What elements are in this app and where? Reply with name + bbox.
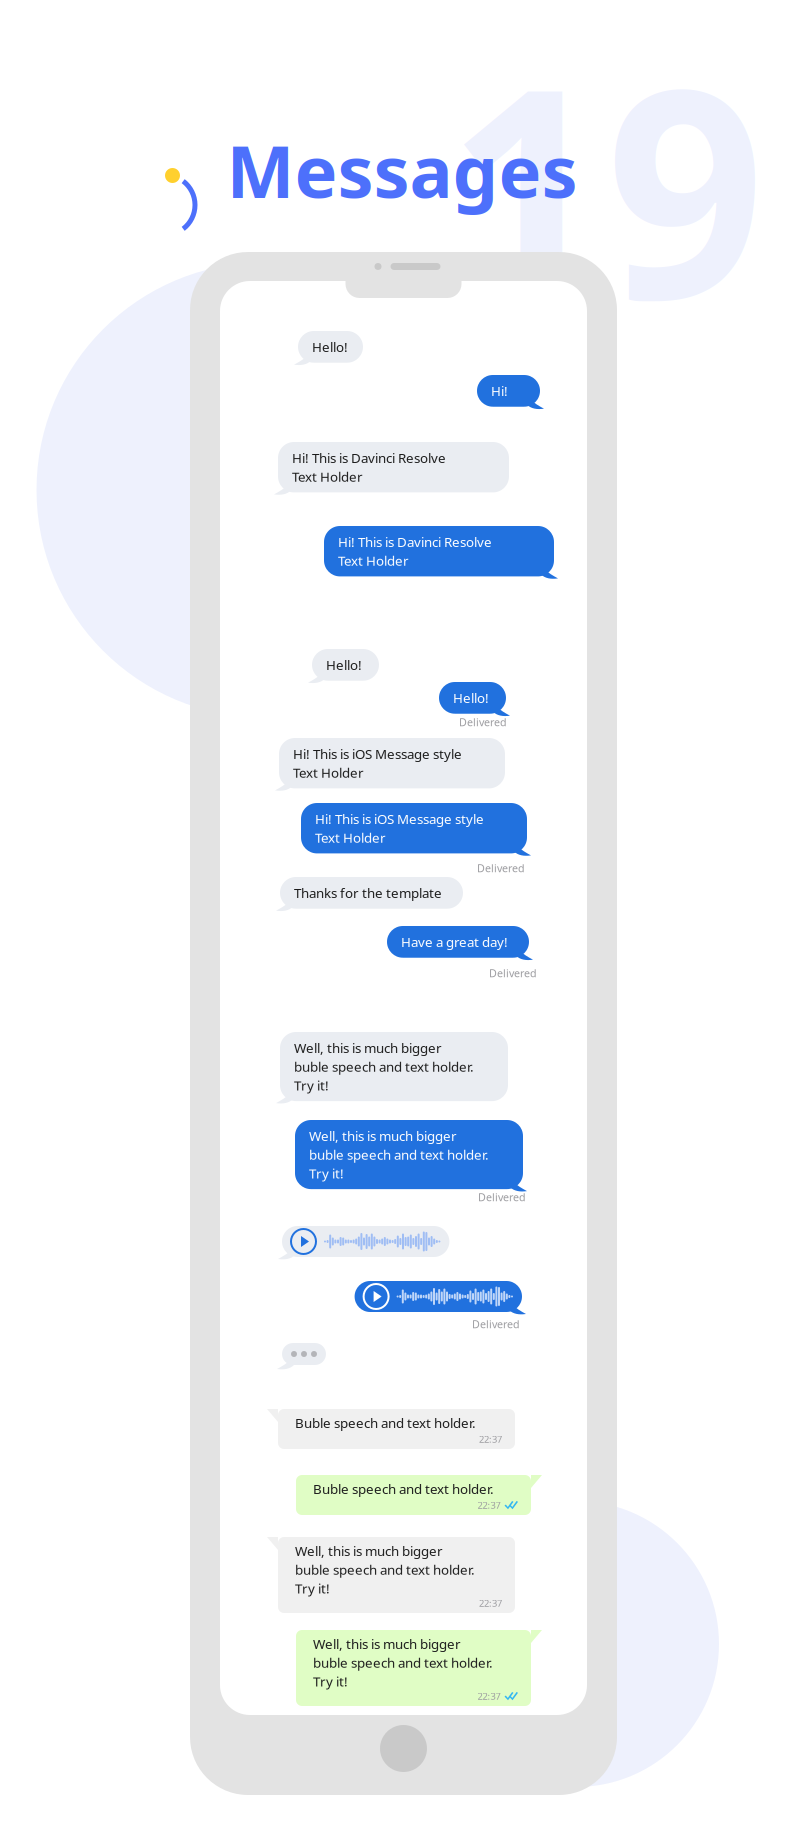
staticText: Hi! This is Davinci Resolve bbox=[292, 449, 446, 467]
staticText: Hi! This is iOS Message style bbox=[315, 810, 484, 828]
staticText: Text Holder bbox=[292, 468, 363, 485]
staticText: Delivered bbox=[459, 715, 507, 729]
staticText: Have a great day! bbox=[401, 933, 508, 951]
staticText: buble speech and text holder. bbox=[294, 1058, 474, 1075]
staticText: 22:37 bbox=[477, 1690, 500, 1702]
staticText: Well, this is much bigger bbox=[294, 1039, 442, 1057]
staticText: Hi! bbox=[491, 382, 508, 400]
staticText: Well, this is much bigger bbox=[313, 1635, 461, 1653]
staticText: Delivered bbox=[477, 861, 525, 875]
staticText: Text Holder bbox=[293, 764, 364, 781]
staticText: 19 bbox=[441, 0, 771, 378]
staticText: Messages bbox=[226, 122, 577, 218]
staticText: buble speech and text holder. bbox=[295, 1561, 475, 1578]
staticText: Hello! bbox=[453, 689, 489, 707]
staticText: Buble speech and text holder. bbox=[295, 1414, 476, 1432]
staticText: Thanks for the template bbox=[294, 884, 442, 902]
staticText: Try it! bbox=[309, 1164, 344, 1182]
staticText: Hi! This is Davinci Resolve bbox=[338, 533, 492, 551]
staticText: Buble speech and text holder. bbox=[313, 1480, 494, 1498]
staticText: Well, this is much bigger bbox=[295, 1542, 443, 1560]
staticText: Delivered bbox=[472, 1317, 520, 1331]
staticText: Hello! bbox=[326, 656, 362, 674]
staticText: 22:37 bbox=[479, 1597, 502, 1609]
staticText: Delivered bbox=[478, 1190, 526, 1204]
staticText: Delivered bbox=[489, 966, 537, 980]
staticText: buble speech and text holder. bbox=[309, 1146, 489, 1163]
staticText: Hello! bbox=[312, 338, 348, 356]
staticText: Try it! bbox=[294, 1076, 329, 1094]
staticText: Text Holder bbox=[338, 552, 409, 569]
staticText: 22:37 bbox=[479, 1433, 502, 1445]
staticText: Try it! bbox=[313, 1672, 348, 1690]
staticText: Text Holder bbox=[315, 829, 386, 846]
staticText: 22:37 bbox=[477, 1499, 500, 1511]
staticText: Well, this is much bigger bbox=[309, 1127, 457, 1145]
staticText: buble speech and text holder. bbox=[313, 1654, 493, 1671]
staticText: Hi! This is iOS Message style bbox=[293, 745, 462, 763]
staticText: Try it! bbox=[295, 1579, 330, 1597]
